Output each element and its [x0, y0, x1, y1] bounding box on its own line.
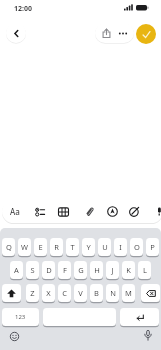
staticText: C — [62, 288, 67, 298]
button[interactable]: O — [130, 238, 143, 256]
staticText: Z — [30, 288, 35, 298]
staticText: G — [78, 265, 84, 275]
staticText: 12:00 — [14, 4, 32, 14]
staticText: M — [125, 288, 132, 298]
button[interactable]: T — [66, 238, 79, 256]
button[interactable]: F — [58, 261, 71, 279]
button[interactable]: X — [42, 284, 55, 302]
button[interactable] — [43, 308, 116, 326]
staticText: I — [119, 242, 122, 252]
staticText: W — [21, 242, 28, 252]
button[interactable]: B — [90, 284, 103, 302]
button[interactable]: Aa — [6, 202, 23, 221]
button[interactable] — [31, 202, 48, 221]
button[interactable]: W — [18, 238, 31, 256]
button[interactable] — [140, 328, 155, 343]
staticText: L — [143, 265, 147, 275]
staticText: T — [70, 242, 75, 252]
button[interactable] — [7, 329, 22, 344]
button[interactable]: P — [146, 238, 159, 256]
staticText: Aa — [10, 206, 20, 217]
button[interactable] — [2, 284, 21, 302]
button[interactable]: R — [50, 238, 63, 256]
staticText: N — [110, 288, 116, 298]
staticText: B — [94, 288, 99, 298]
button[interactable]: U — [98, 238, 111, 256]
button[interactable] — [54, 202, 72, 221]
button[interactable]: K — [122, 261, 135, 279]
button[interactable]: L — [138, 261, 151, 279]
button[interactable]: S — [26, 261, 39, 279]
button[interactable] — [81, 202, 99, 221]
button[interactable] — [103, 202, 121, 221]
staticText: A — [14, 265, 19, 275]
button[interactable]: V — [74, 284, 87, 302]
button[interactable]: Y — [82, 238, 95, 256]
button[interactable] — [6, 23, 26, 43]
button[interactable]: H — [90, 261, 103, 279]
button[interactable]: A — [10, 261, 23, 279]
staticText: Y — [86, 242, 91, 252]
staticText: U — [102, 242, 108, 252]
button[interactable]: N — [106, 284, 119, 302]
button[interactable]: D — [42, 261, 55, 279]
button[interactable]: Z — [26, 284, 39, 302]
button[interactable]: M — [122, 284, 135, 302]
staticText: K — [126, 265, 131, 275]
staticText: 123 — [15, 313, 26, 321]
staticText: P — [150, 242, 155, 252]
button[interactable]: E — [34, 238, 47, 256]
button[interactable] — [120, 308, 159, 326]
staticText: E — [38, 242, 43, 252]
staticText: V — [78, 288, 83, 298]
staticText: R — [54, 242, 59, 252]
staticText: J — [111, 265, 114, 275]
button[interactable] — [125, 202, 143, 221]
button[interactable] — [115, 25, 131, 41]
button[interactable] — [155, 202, 161, 221]
button[interactable] — [136, 24, 156, 44]
staticText: O — [134, 242, 140, 252]
button[interactable] — [98, 25, 114, 41]
button[interactable]: I — [114, 238, 127, 256]
button[interactable] — [141, 284, 160, 302]
button[interactable]: J — [106, 261, 119, 279]
staticText: H — [94, 265, 100, 275]
button[interactable]: 123 — [2, 308, 39, 326]
staticText: D — [46, 265, 52, 275]
button[interactable]: G — [74, 261, 87, 279]
staticText: F — [63, 265, 67, 275]
staticText: Q — [6, 242, 12, 252]
button[interactable]: C — [58, 284, 71, 302]
button[interactable]: Q — [2, 238, 15, 256]
staticText: S — [30, 265, 35, 275]
staticText: X — [46, 288, 51, 298]
